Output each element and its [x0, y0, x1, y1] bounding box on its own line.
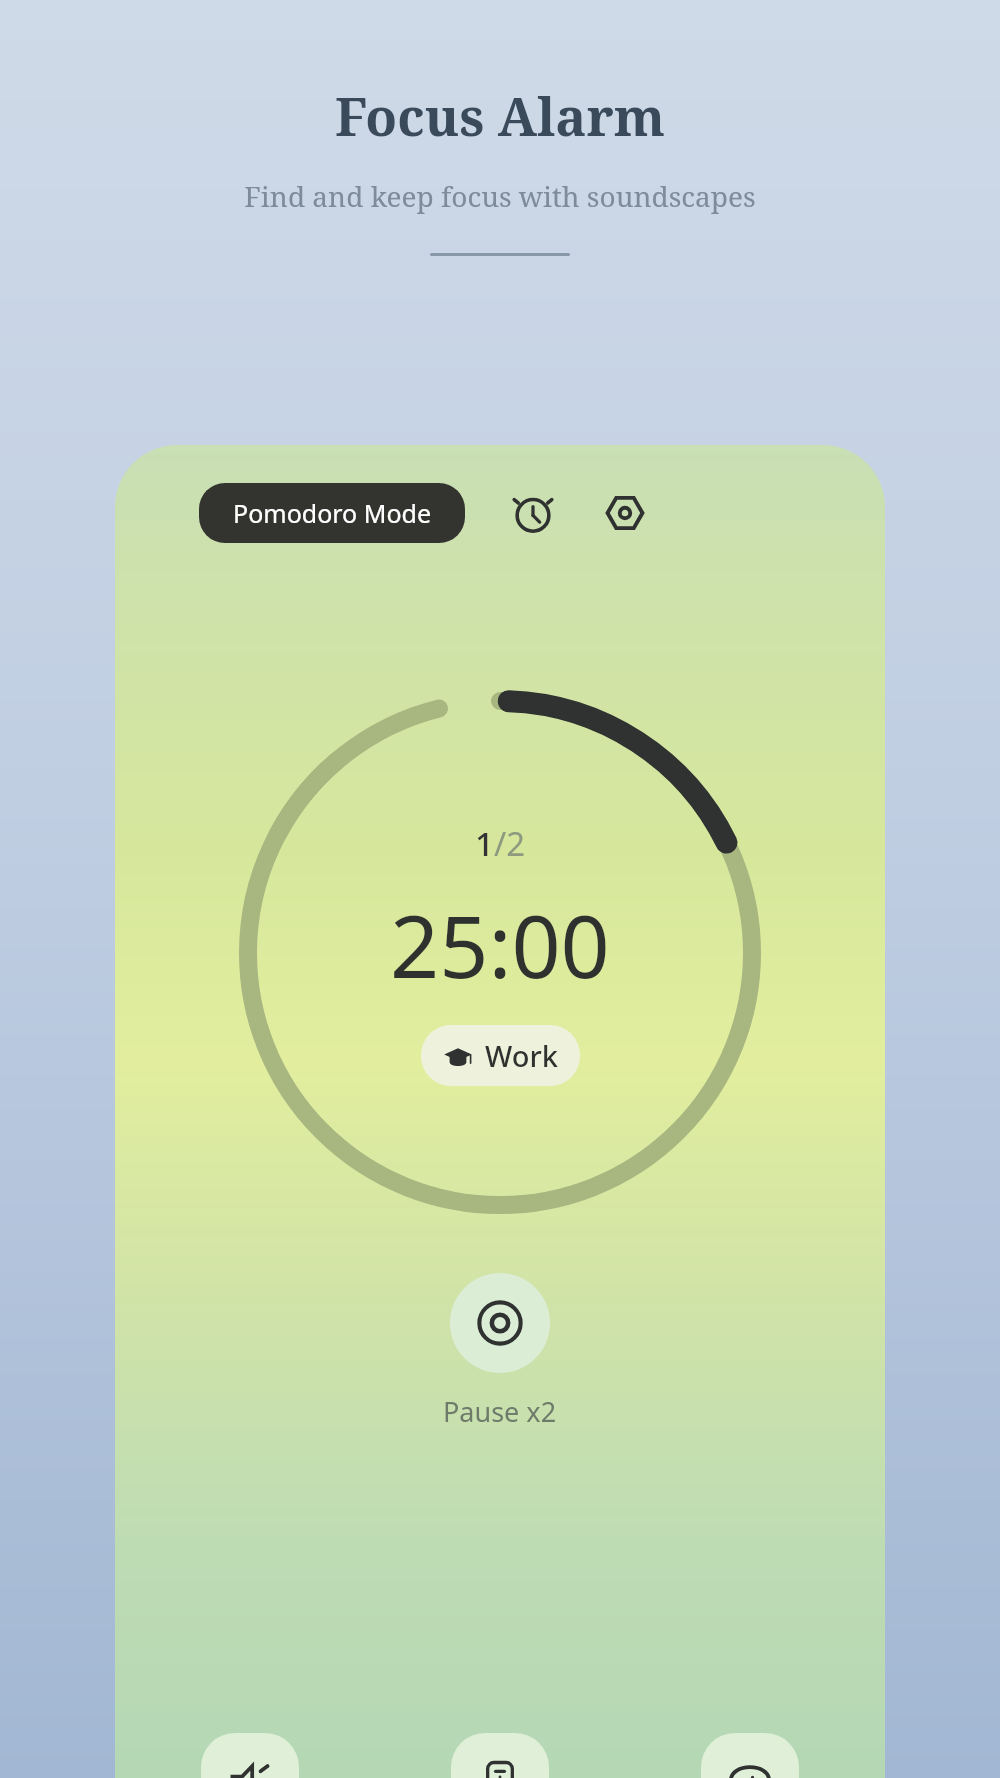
staticText: /2: [494, 821, 526, 866]
button[interactable]: Settings: [597, 485, 653, 541]
staticText: Work: [485, 1036, 558, 1075]
button[interactable]: Alarm: [505, 485, 561, 541]
button[interactable]: Sound: [201, 1733, 299, 1778]
button[interactable]: Equalizer: [701, 1733, 799, 1778]
staticText: 1: [475, 821, 494, 866]
button[interactable]: Pomodoro Mode: [199, 483, 465, 543]
staticText: Pause x2: [443, 1393, 557, 1430]
staticText: Focus Alarm: [335, 80, 665, 151]
staticText: 25:00: [390, 886, 610, 1003]
button[interactable]: Ambience: [451, 1733, 549, 1778]
button[interactable]: Pause: [450, 1273, 550, 1373]
button[interactable]: Work: [421, 1025, 580, 1086]
staticText: Find and keep focus with soundscapes: [244, 177, 756, 215]
staticText: Pomodoro Mode: [233, 496, 431, 530]
